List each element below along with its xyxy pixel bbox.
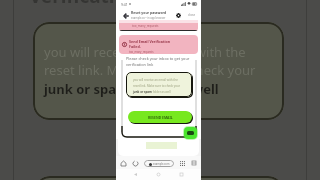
staticText: too_many_requests [132, 24, 159, 28]
button[interactable]: Settings [174, 11, 183, 20]
staticText: Reset your password [131, 10, 167, 15]
staticText: Send Email Verification [129, 39, 171, 44]
button[interactable]: Close [188, 11, 196, 19]
staticText: RESEND EMAIL [148, 115, 173, 120]
staticText: example.com [153, 162, 170, 166]
button[interactable]: Home [155, 171, 162, 178]
staticText: Please check your inbox to get your [126, 56, 190, 61]
staticText: Failed. [129, 44, 141, 49]
staticText: reset link. Make sure to check your [44, 61, 256, 79]
button[interactable]: Tabs [178, 159, 186, 167]
staticText: verification email [30, 0, 202, 9]
staticText: 9:41 [121, 2, 128, 7]
staticText: junk or spam folder as well [44, 80, 219, 98]
staticText: close [188, 13, 196, 17]
staticText: folder as well [152, 90, 171, 94]
button[interactable]: Recent apps [178, 171, 185, 178]
button[interactable]: RESEND EMAIL [128, 111, 192, 123]
button[interactable]: example.com [144, 160, 174, 167]
button[interactable]: Reload [131, 159, 139, 167]
staticText: you will receive an email with the [44, 43, 246, 61]
button[interactable]: Home [119, 159, 127, 167]
staticText: too_many_requests [129, 50, 154, 54]
button[interactable]: Back [121, 11, 130, 20]
staticText: verification link [126, 62, 154, 67]
button[interactable]: Menu [190, 159, 198, 167]
staticText: reset link. Make sure to check your [133, 84, 181, 88]
staticText: example.co • in app browser [131, 16, 166, 20]
button[interactable]: Open chat [184, 127, 197, 139]
staticText: junk or spam [133, 90, 152, 94]
button[interactable]: Back [132, 171, 139, 178]
staticText: you will receive an email with the [133, 78, 178, 82]
